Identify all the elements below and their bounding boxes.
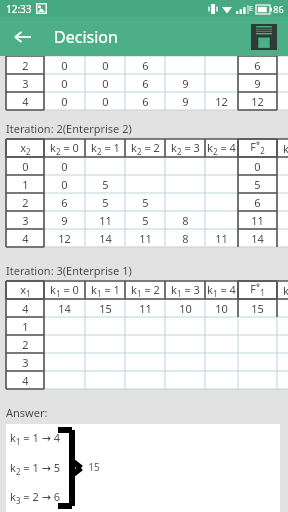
staticText: k2 = 0 xyxy=(50,140,79,157)
staticText: 10 xyxy=(179,301,192,316)
staticText: 2 xyxy=(22,337,29,352)
staticText: k2 = 4 xyxy=(207,140,236,157)
staticText: 12 xyxy=(58,231,71,246)
button[interactable]: Save xyxy=(246,19,282,55)
staticText: k xyxy=(283,141,288,156)
staticText: 4 xyxy=(22,94,29,109)
staticText: 3 xyxy=(22,355,29,370)
staticText: 10 xyxy=(215,301,228,316)
staticText: k1 = 3 xyxy=(171,282,200,299)
staticText: 4 xyxy=(22,373,29,388)
staticText: 14 xyxy=(58,301,71,316)
staticText: 12 xyxy=(215,94,228,109)
staticText: 0 xyxy=(22,159,29,174)
staticText: 12 xyxy=(251,94,264,109)
staticText: 11 xyxy=(139,231,152,246)
staticText: 5 xyxy=(102,195,109,210)
staticText: 2 xyxy=(22,195,29,210)
staticText: 1 xyxy=(22,177,29,192)
staticText: 3 xyxy=(22,213,29,228)
staticText: 5 xyxy=(142,195,149,210)
staticText: k1 = 2 xyxy=(131,282,160,299)
staticText: Iteration: 2(Enterprise 2) xyxy=(6,121,132,136)
staticText: 15 xyxy=(99,301,112,316)
staticText: 0 xyxy=(102,76,109,91)
staticText: x2 xyxy=(20,140,31,157)
staticText: 11 xyxy=(139,301,152,316)
button[interactable]: Back xyxy=(6,20,40,54)
staticText: 4 xyxy=(22,301,29,316)
staticText: k1 = 1 xyxy=(91,282,120,299)
staticText: 9 xyxy=(254,76,261,91)
staticText: 86 xyxy=(273,3,284,15)
staticText: F*1 xyxy=(250,281,265,299)
staticText: 6 xyxy=(142,58,149,73)
staticText: k3 = 2 → 6 xyxy=(10,489,60,506)
staticText: 2 xyxy=(22,58,29,73)
staticText: k xyxy=(283,283,288,298)
staticText: 9 xyxy=(182,76,189,91)
staticText: Answer: xyxy=(6,405,48,420)
staticText: 6 xyxy=(142,94,149,109)
staticText: 8 xyxy=(182,231,189,246)
staticText: 5 xyxy=(102,177,109,192)
staticText: k2 = 1 → 5 xyxy=(10,460,60,477)
staticText: 14 xyxy=(99,231,112,246)
staticText: 15 xyxy=(251,301,264,316)
staticText: F*2 xyxy=(250,139,265,157)
staticText: Decision xyxy=(54,26,118,48)
staticText: 8 xyxy=(182,213,189,228)
staticText: 4 xyxy=(22,231,29,246)
staticText: k2 = 3 xyxy=(171,140,200,157)
staticText: 15 xyxy=(88,460,100,474)
staticText: 5 xyxy=(254,177,261,192)
staticText: 6 xyxy=(254,58,261,73)
staticText: k1 = 1 → 4 xyxy=(10,430,60,447)
staticText: x1 xyxy=(20,282,31,299)
staticText: k1 = 0 xyxy=(50,282,79,299)
staticText: 0 xyxy=(61,177,68,192)
staticText: 11 xyxy=(251,213,264,228)
staticText: 9 xyxy=(61,213,68,228)
staticText: 5 xyxy=(142,213,149,228)
staticText: 6 xyxy=(142,76,149,91)
staticText: Iteration: 3(Enterprise 1) xyxy=(6,263,132,278)
staticText: 11 xyxy=(215,231,228,246)
staticText: 0 xyxy=(61,58,68,73)
staticText: 6 xyxy=(61,195,68,210)
staticText: 9 xyxy=(182,94,189,109)
staticText: 0 xyxy=(61,76,68,91)
staticText: 1 xyxy=(22,319,29,334)
staticText: 0 xyxy=(61,159,68,174)
staticText: 0 xyxy=(102,94,109,109)
staticText: 12:33 xyxy=(6,2,32,16)
staticText: k1 = 4 xyxy=(207,282,236,299)
staticText: 11 xyxy=(99,213,112,228)
staticText: k2 = 2 xyxy=(131,140,160,157)
staticText: 0 xyxy=(102,58,109,73)
staticText: 3 xyxy=(22,76,29,91)
staticText: 6 xyxy=(254,195,261,210)
staticText: 0 xyxy=(254,159,261,174)
staticText: 14 xyxy=(251,231,264,246)
staticText: 0 xyxy=(61,94,68,109)
staticText: E xyxy=(249,4,253,14)
staticText: k2 = 1 xyxy=(91,140,120,157)
